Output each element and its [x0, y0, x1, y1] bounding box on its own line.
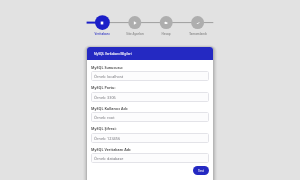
staticText: Tamamlandı: [173, 32, 223, 36]
staticText: Test: [198, 169, 205, 173]
button[interactable]: Örnek: root: [91, 112, 209, 122]
staticText: Örnek: localhost: [94, 74, 124, 79]
staticText: MySQL Sunucusu:: [91, 65, 123, 70]
staticText: MySQL Veritabanı Bilgileri: [94, 52, 132, 56]
button[interactable]: Tamamlandı: [190, 15, 206, 31]
button[interactable]: Örnek: 3306: [91, 92, 209, 102]
staticText: Veritabanı: [77, 32, 127, 36]
staticText: Örnek: database: [94, 156, 124, 161]
staticText: Örnek: 123456: [94, 136, 121, 141]
button[interactable]: Örnek: 123456: [91, 133, 209, 143]
button[interactable]: Site Ayarları: [127, 15, 143, 31]
staticText: MySQL Veritabanı Adı:: [91, 147, 132, 152]
button[interactable]: Örnek: database: [91, 153, 209, 163]
button[interactable]: Hesap: [158, 15, 174, 31]
staticText: MySQL Kullanıcı Adı:: [91, 106, 128, 111]
staticText: Site Ayarları: [110, 32, 160, 36]
button[interactable]: Test: [193, 166, 209, 175]
staticText: Örnek: 3306: [94, 95, 116, 100]
staticText: MySQL Portu:: [91, 85, 116, 90]
staticText: Örnek: root: [94, 115, 115, 120]
button[interactable]: Veritabanı: [94, 15, 110, 31]
staticText: MySQL Şifresi:: [91, 126, 117, 131]
button[interactable]: Örnek: localhost: [91, 71, 209, 81]
staticText: Hesap: [141, 32, 191, 36]
